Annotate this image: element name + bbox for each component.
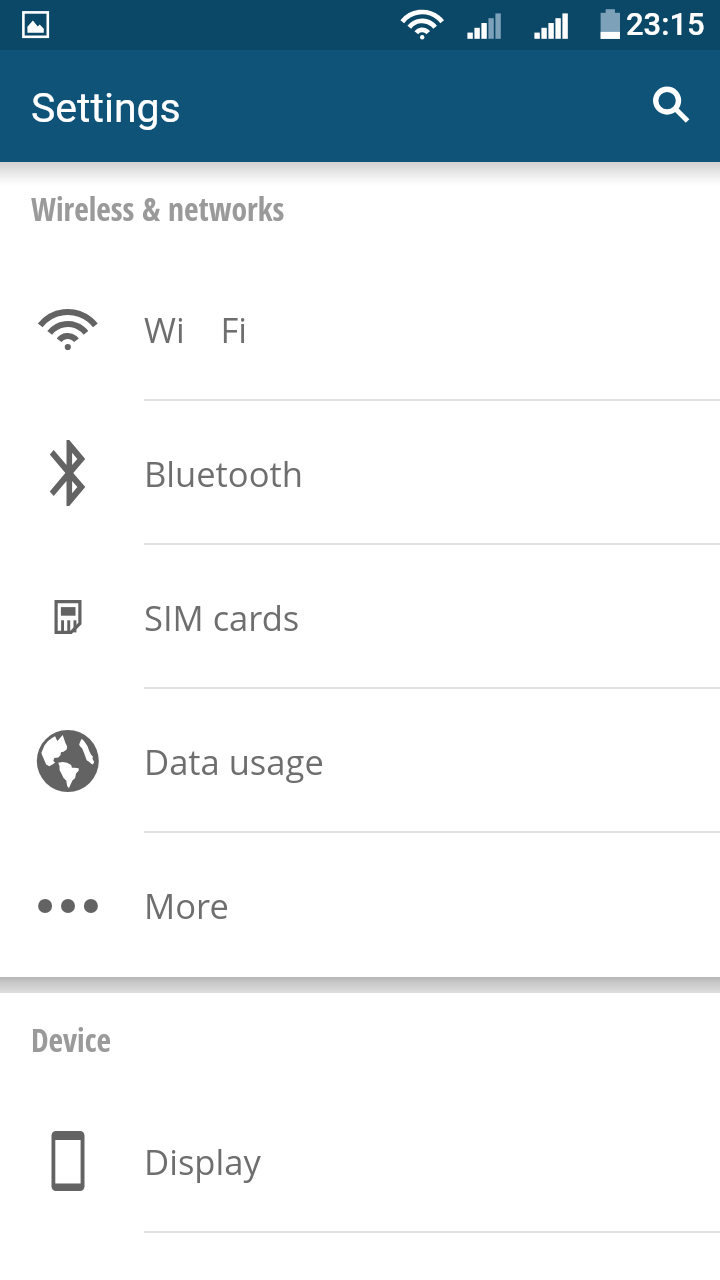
button[interactable]: Bluetooth: [0, 401, 720, 545]
button[interactable]: Data usage: [0, 689, 720, 833]
button[interactable]: Search: [634, 73, 700, 139]
button[interactable]: Display: [0, 1089, 720, 1233]
staticText: Wireless & networks: [31, 187, 285, 230]
button[interactable]: Wi Fi: [0, 257, 720, 401]
staticText: Device: [31, 1018, 111, 1061]
staticText: Bluetooth: [144, 450, 303, 497]
staticText: 23:15: [626, 6, 705, 42]
staticText: Wi Fi: [144, 306, 248, 353]
staticText: Settings: [31, 84, 181, 132]
button[interactable]: SIM cards: [0, 545, 720, 689]
staticText: Display: [144, 1138, 261, 1185]
staticText: More: [144, 882, 229, 929]
staticText: SIM cards: [144, 594, 300, 641]
staticText: Data usage: [144, 738, 324, 785]
button[interactable]: More: [0, 833, 720, 977]
